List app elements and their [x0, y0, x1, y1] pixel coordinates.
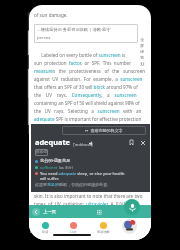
- button[interactable]: Back: [32, 208, 40, 216]
- staticText: 阅读理解: [97, 230, 110, 234]
- staticText: (as 充分): [59, 165, 74, 170]
- button[interactable]: 阅读理解: [96, 222, 111, 234]
- staticText: will suffer.: [40, 176, 59, 181]
- staticText: the UV rays. Selecting a sunscreen with …: [34, 108, 142, 114]
- staticText: adequate SPF is important for effective …: [34, 116, 142, 122]
- button[interactable]: Bookmark: [128, 139, 135, 146]
- staticText: skin. It is also important to note that …: [34, 193, 143, 199]
- button[interactable]: Close: [139, 139, 146, 146]
- staticText: that offers an SPF of 30 will block arou…: [34, 84, 138, 90]
- staticText: persist: [37, 35, 51, 41]
- button[interactable]: Voice: [124, 199, 140, 215]
- staticText: sufficient: [40, 165, 58, 170]
- staticText: against UV radiation. For example, a sun…: [34, 76, 143, 82]
- staticText: 上一页: [43, 209, 57, 215]
- staticText: You need adequate sleep, or else your he…: [40, 171, 125, 176]
- staticText: 屏: [140, 43, 145, 48]
- staticText: 你需要充足的睡眠，否则你的健康就受损。: [35, 182, 111, 187]
- staticText: 形容词: [36, 150, 47, 155]
- staticText: 充分的·适量充足: [40, 158, 71, 164]
- button[interactable]: ↔ 查看完整的释义字: [62, 126, 146, 135]
- staticText: -- 继续坚持记·务必切记休眠 | 清晰·坚守: [37, 27, 111, 33]
- staticText: of sun damage.: [34, 12, 68, 18]
- staticText: 笔: [140, 55, 145, 60]
- button[interactable]: Profile: [122, 219, 137, 234]
- staticText: 听读: [42, 230, 49, 234]
- button[interactable]: 听读: [41, 222, 50, 234]
- button[interactable]: Menu: [95, 208, 103, 216]
- staticText: 划: [140, 61, 145, 66]
- staticText: types of UV radiation: ultraviolet A (UV…: [34, 201, 139, 207]
- staticText: Labeled on every bottle of sunscreen is: [34, 52, 126, 58]
- button[interactable]: Pronounce: [88, 140, 94, 146]
- staticText: containing an SPF of 50 will shield agai…: [34, 100, 140, 106]
- staticText: [ˈædɪkwət]: [73, 142, 93, 147]
- button[interactable]: 口语: [69, 222, 78, 234]
- staticText: ↔ 查看完整的释义字: [85, 128, 123, 133]
- staticText: the UV rays. Consequently, a sunscreen: [34, 92, 137, 98]
- staticText: 译: [140, 49, 145, 54]
- staticText: sun protection factor, or SPF. This numb…: [34, 60, 132, 66]
- staticText: 全: [140, 37, 145, 42]
- button[interactable]: Tools: [140, 36, 145, 66]
- staticText: 口语: [70, 230, 77, 234]
- staticText: adequate: [35, 137, 71, 147]
- staticText: measures the protectiveness of the sunsc…: [34, 68, 146, 74]
